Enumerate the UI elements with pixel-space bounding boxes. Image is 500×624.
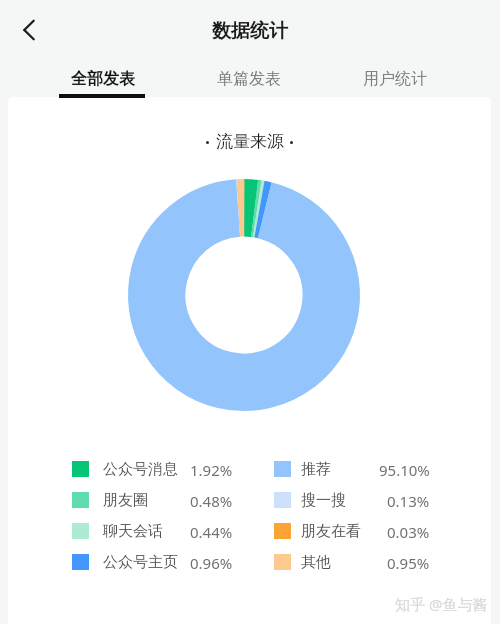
staticText: 0.44% [190,522,233,542]
button[interactable]: 朋友在看 [250,516,500,547]
button[interactable]: 单篇发表 [176,69,322,94]
staticText: 数据统计 [212,19,288,43]
staticText: 0.96% [190,553,233,573]
staticText: 推荐 [301,460,331,479]
staticText: 搜一搜 [301,491,346,510]
button[interactable]: 朋友圈 [0,485,250,516]
staticText: 0.48% [190,491,233,511]
staticText: 1.92% [190,460,233,480]
staticText: 流量来源 [216,131,284,152]
staticText: 朋友在看 [301,522,361,541]
staticText: 其他 [301,553,331,572]
button[interactable]: 聊天会话 [0,516,250,547]
button[interactable]: 用户统计 [322,69,468,94]
button[interactable]: 推荐 [250,454,500,485]
button[interactable]: 搜一搜 [250,485,500,516]
staticText: 公众号主页 [103,553,178,572]
staticText: 0.95% [387,553,430,573]
button[interactable]: Back [5,6,53,54]
staticText: 0.13% [387,491,430,511]
button[interactable]: 公众号消息 [0,454,250,485]
staticText: 公众号消息 [103,460,178,479]
staticText: 朋友圈 [103,491,148,510]
button[interactable]: 全部发表 [30,69,176,98]
staticText: 0.03% [387,522,430,542]
staticText: 95.10% [379,460,430,480]
staticText: 单篇发表 [217,69,281,89]
staticText: 全部发表 [71,69,135,89]
button[interactable]: 其他 [250,547,500,578]
button[interactable]: 公众号主页 [0,547,250,578]
staticText: 聊天会话 [103,522,163,541]
staticText: 用户统计 [363,69,427,89]
staticText: 知乎 @鱼与酱 [395,594,488,614]
